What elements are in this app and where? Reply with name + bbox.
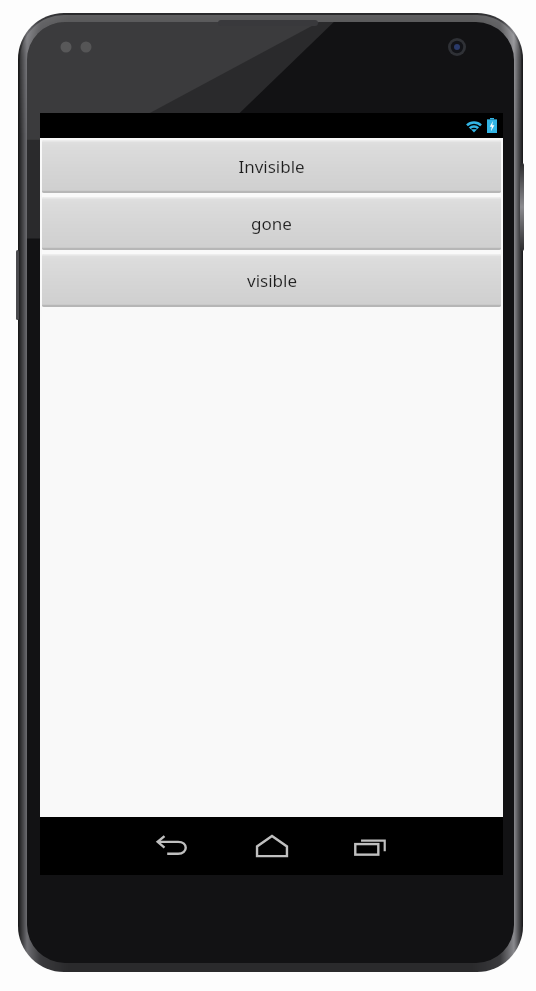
button[interactable]: Recent apps	[322, 817, 418, 875]
staticText: visible	[247, 269, 297, 292]
staticText: gone	[251, 212, 292, 235]
button[interactable]: Home	[224, 817, 320, 875]
button[interactable]: gone	[42, 197, 501, 250]
staticText: Invisible	[238, 155, 305, 178]
button[interactable]: Invisible	[42, 140, 501, 193]
button[interactable]: visible	[42, 254, 501, 307]
button[interactable]: Back	[126, 817, 222, 875]
